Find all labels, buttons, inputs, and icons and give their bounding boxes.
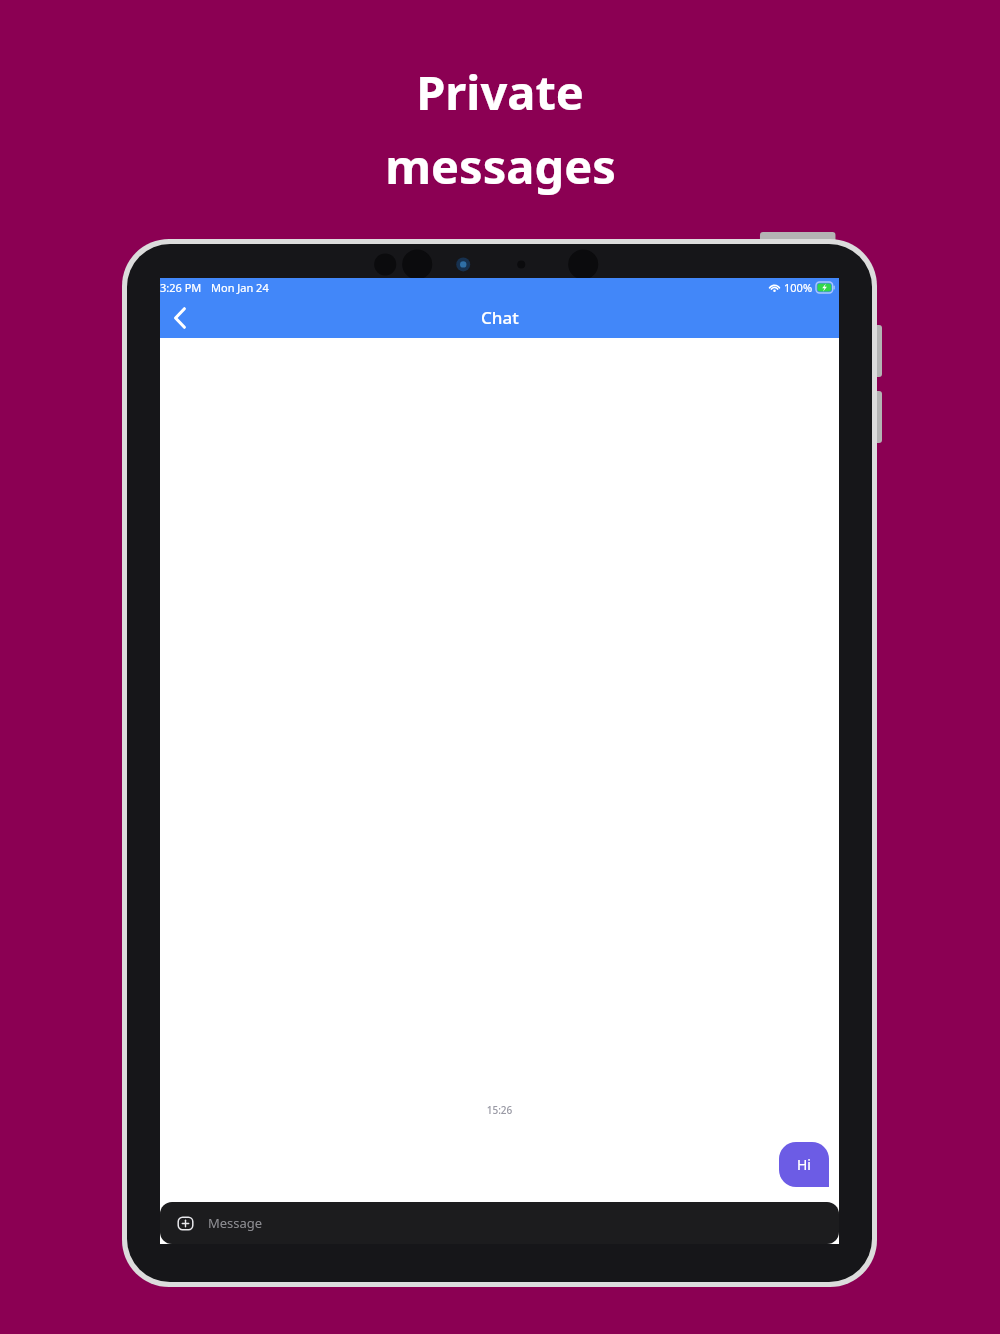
staticText: 100%	[784, 280, 813, 295]
button[interactable]: Add attachment	[160, 1202, 839, 1244]
button[interactable]: Add attachment	[174, 1212, 196, 1234]
staticText: Mon Jan 24	[211, 280, 269, 295]
staticText: messages	[385, 134, 616, 198]
button[interactable]: Hi	[779, 1142, 829, 1187]
staticText: Chat	[481, 306, 519, 329]
staticText: 3:26 PM	[160, 280, 202, 295]
staticText: Hi	[797, 1155, 811, 1174]
staticText: Message	[208, 1214, 263, 1232]
button[interactable]: Back	[160, 298, 200, 338]
staticText: Private	[416, 60, 584, 124]
staticText: 15:26	[160, 1103, 839, 1117]
